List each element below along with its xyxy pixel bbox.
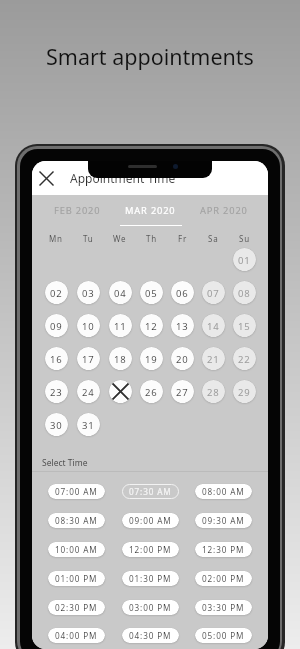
staticText: FEB 2020 xyxy=(54,204,101,217)
button[interactable]: 03:00 PM xyxy=(122,600,179,615)
button[interactable]: 05 xyxy=(140,281,163,304)
staticText: 11 xyxy=(114,320,127,333)
staticText: Smart appointments xyxy=(46,42,254,71)
button[interactable]: FEB 2020 xyxy=(40,195,114,227)
button[interactable]: 22 xyxy=(233,347,256,370)
staticText: 07 xyxy=(207,287,220,300)
button[interactable]: Close xyxy=(33,165,59,191)
staticText: 07:00 AM xyxy=(55,486,98,497)
staticText: 16 xyxy=(50,353,63,366)
staticText: 13 xyxy=(176,320,189,333)
staticText: 01:30 PM xyxy=(129,573,172,584)
button[interactable]: 07 xyxy=(202,281,225,304)
staticText: Tu xyxy=(83,233,94,244)
button[interactable]: 03:30 PM xyxy=(195,600,252,615)
staticText: 09 xyxy=(50,320,63,333)
button[interactable]: 19 xyxy=(140,347,163,370)
staticText: 17 xyxy=(82,353,95,366)
button[interactable]: 31 xyxy=(77,413,100,436)
staticText: 09:30 AM xyxy=(202,515,245,526)
staticText: 03:30 PM xyxy=(202,602,245,613)
staticText: Fr xyxy=(178,233,188,244)
staticText: Su xyxy=(239,233,250,244)
button[interactable]: 09 xyxy=(45,314,68,337)
button[interactable]: 04 xyxy=(109,281,132,304)
staticText: 02 xyxy=(50,287,63,300)
button[interactable]: 05:00 PM xyxy=(195,628,252,643)
button[interactable]: 26 xyxy=(140,380,163,403)
staticText: 23 xyxy=(50,386,63,399)
button[interactable]: 12:00 PM xyxy=(122,542,179,557)
button[interactable]: 10 xyxy=(77,314,100,337)
button[interactable]: 09:00 AM xyxy=(122,513,179,528)
staticText: 08:30 AM xyxy=(55,515,98,526)
button[interactable]: 23 xyxy=(45,380,68,403)
button[interactable]: 04:00 PM xyxy=(48,628,105,643)
button[interactable]: 01:30 PM xyxy=(122,571,179,586)
staticText: 05 xyxy=(145,287,158,300)
button[interactable]: 10:00 AM xyxy=(48,542,105,557)
button[interactable]: APR 2020 xyxy=(187,195,260,227)
staticText: 12:00 PM xyxy=(129,544,172,555)
button[interactable]: 12 xyxy=(140,314,163,337)
button[interactable]: 15 xyxy=(233,314,256,337)
staticText: Mn xyxy=(49,233,63,244)
staticText: Sa xyxy=(208,233,219,244)
staticText: 24 xyxy=(82,386,95,399)
staticText: APR 2020 xyxy=(200,204,248,217)
staticText: Appointment Time xyxy=(70,170,176,186)
staticText: 20 xyxy=(176,353,189,366)
staticText: 05:00 PM xyxy=(202,630,245,641)
button[interactable]: 04:30 PM xyxy=(122,628,179,643)
button[interactable]: 01 xyxy=(233,248,256,271)
staticText: 18 xyxy=(114,353,127,366)
staticText: 31 xyxy=(82,419,95,432)
staticText: 07:30 AM xyxy=(129,486,172,497)
button[interactable]: 24 xyxy=(77,380,100,403)
button[interactable]: 01:00 PM xyxy=(48,571,105,586)
staticText: 03:00 PM xyxy=(129,602,172,613)
button[interactable]: 03 xyxy=(77,281,100,304)
staticText: 01 xyxy=(238,254,251,267)
button[interactable]: 17 xyxy=(77,347,100,370)
button[interactable]: 08:00 AM xyxy=(195,484,252,499)
staticText: We xyxy=(113,233,127,244)
staticText: 10:00 AM xyxy=(55,544,98,555)
staticText: 19 xyxy=(145,353,158,366)
button[interactable]: 21 xyxy=(202,347,225,370)
button[interactable]: 27 xyxy=(171,380,194,403)
button[interactable]: 08:30 AM xyxy=(48,513,105,528)
staticText: 21 xyxy=(207,353,220,366)
button[interactable] xyxy=(109,380,132,403)
button[interactable]: 07:30 AM xyxy=(122,484,179,499)
button[interactable]: 14 xyxy=(202,314,225,337)
button[interactable]: 11 xyxy=(109,314,132,337)
button[interactable]: MAR 2020 xyxy=(114,195,187,227)
button[interactable]: 02:30 PM xyxy=(48,600,105,615)
button[interactable]: 16 xyxy=(45,347,68,370)
staticText: MAR 2020 xyxy=(125,204,176,217)
button[interactable]: 28 xyxy=(202,380,225,403)
button[interactable]: 13 xyxy=(171,314,194,337)
button[interactable]: 02:00 PM xyxy=(195,571,252,586)
button[interactable]: 09:30 AM xyxy=(195,513,252,528)
button[interactable]: 08 xyxy=(233,281,256,304)
staticText: 26 xyxy=(145,386,158,399)
staticText: Th xyxy=(146,233,157,244)
button[interactable]: 06 xyxy=(171,281,194,304)
button[interactable]: 30 xyxy=(45,413,68,436)
staticText: 10 xyxy=(82,320,95,333)
staticText: 15 xyxy=(238,320,251,333)
button[interactable]: 07:00 AM xyxy=(48,484,105,499)
staticText: 12 xyxy=(145,320,158,333)
button[interactable]: 20 xyxy=(171,347,194,370)
button[interactable]: 18 xyxy=(109,347,132,370)
button[interactable]: 29 xyxy=(233,380,256,403)
staticText: Select Time xyxy=(42,457,88,469)
button[interactable]: 02 xyxy=(45,281,68,304)
staticText: 04 xyxy=(114,287,127,300)
staticText: 28 xyxy=(207,386,220,399)
staticText: 01:00 PM xyxy=(55,573,98,584)
staticText: 29 xyxy=(238,386,251,399)
button[interactable]: 12:30 PM xyxy=(195,542,252,557)
